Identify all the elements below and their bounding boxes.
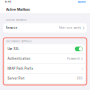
staticText: After one week — [59, 26, 82, 30]
staticText: 993 — [77, 77, 83, 80]
staticText: 9:41 — [5, 1, 11, 3]
staticText: Use SSL — [7, 47, 19, 51]
staticText: IMAP Path Prefix — [7, 67, 33, 70]
staticText: Active Mailbox — [6, 7, 30, 11]
button[interactable]: Authentication — [5, 54, 85, 63]
staticText: Done — [78, 0, 85, 3]
button[interactable]: Done — [78, 0, 85, 3]
button[interactable]: IMAP Path Prefix — [5, 64, 85, 73]
button[interactable]: Server Port — [5, 74, 85, 83]
staticText: Password — [67, 57, 80, 60]
staticText: DELETED MESSAGES — [6, 19, 26, 21]
staticText: Server Port — [7, 77, 24, 80]
staticText: Remove — [6, 26, 18, 30]
staticText: Authentication — [7, 57, 30, 60]
button[interactable]: Use SSL — [5, 44, 85, 54]
button[interactable]: Remove — [3, 23, 87, 33]
staticText: / — [82, 67, 83, 70]
staticText: INCOMING SETTINGS — [6, 40, 31, 43]
